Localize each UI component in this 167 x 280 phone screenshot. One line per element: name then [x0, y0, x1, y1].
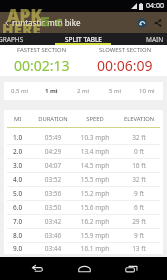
button[interactable]: SLOWEST SECTION — [83, 45, 167, 76]
staticText: 15.2 mph — [75, 189, 115, 198]
staticText: 5 mi — [109, 87, 122, 95]
staticText: SPEED — [75, 115, 115, 123]
staticText: 00:02:13 — [14, 56, 70, 75]
staticText: 04:00 — [146, 1, 164, 11]
staticText: GRAPHS — [0, 35, 24, 44]
staticText: 14.5 mph — [75, 161, 115, 170]
staticText: 1 mi — [45, 87, 58, 95]
staticText: 4.0 — [4, 175, 31, 184]
button[interactable]: FASTEST SECTION — [0, 45, 83, 76]
staticText: 04:29 — [31, 147, 75, 156]
button[interactable]: 2.0 — [4, 145, 163, 158]
staticText: MOB — [37, 14, 62, 27]
button[interactable]: Home — [70, 257, 98, 280]
button[interactable]: 6.0 — [4, 201, 163, 214]
button[interactable]: 8.0 — [4, 229, 163, 242]
button[interactable]: 0.5 mi — [4, 82, 35, 100]
staticText: 0.5 mi — [11, 87, 29, 95]
staticText: 04:07 — [31, 161, 75, 170]
staticText: 00:06:09 — [97, 56, 153, 75]
staticText: 10.3 mph — [75, 133, 115, 142]
staticText: 03:46 — [31, 231, 75, 240]
button[interactable]: 1.0 — [4, 131, 163, 144]
staticText: MI — [4, 115, 31, 123]
staticText: 13.4 mph — [75, 147, 115, 156]
staticText: 15.6 mph — [75, 203, 115, 212]
button[interactable]: Share — [150, 12, 166, 33]
staticText: 15.5 mph — [75, 175, 115, 184]
button[interactable]: 1 mi — [35, 82, 67, 100]
staticText: 03:50 — [31, 203, 75, 212]
staticText: 6.0 — [4, 203, 31, 212]
button[interactable]: Recent apps — [117, 257, 145, 280]
staticText: 10 mi — [139, 87, 155, 95]
button[interactable]: 9.0 — [4, 243, 163, 254]
staticText: 05:49 — [31, 133, 75, 142]
staticText: 16.1 mph — [75, 244, 115, 253]
button[interactable]: Back — [22, 257, 50, 280]
button[interactable]: 7.0 — [4, 215, 163, 228]
button[interactable]: 3.0 — [4, 159, 163, 172]
staticText: APK — [7, 4, 43, 27]
staticText: 2 mi — [77, 87, 90, 95]
staticText: 1.0 — [4, 133, 31, 142]
staticText: 32 ft — [115, 133, 163, 142]
button[interactable]: GRAPHS — [0, 33, 47, 45]
staticText: 03:42 — [31, 217, 75, 226]
staticText: SLOWEST SECTION — [99, 46, 152, 54]
staticText: 13 ft — [115, 244, 163, 253]
staticText: 6 ft — [115, 203, 163, 212]
staticText: 03:44 — [31, 244, 75, 253]
staticText: FASTEST SECTION — [17, 46, 67, 54]
staticText: 29 ft — [115, 217, 163, 226]
staticText: 03:56 — [31, 189, 75, 198]
staticText: 8.0 — [4, 231, 31, 240]
staticText: 3.0 — [4, 161, 31, 170]
staticText: 16.2 mph — [75, 217, 115, 226]
staticText: 16 ft — [115, 161, 163, 170]
staticText: 7.0 — [4, 217, 31, 226]
staticText: 15.9 mph — [75, 231, 115, 240]
staticText: runtastic mtn bike — [12, 17, 81, 28]
button[interactable]: 10 mi — [131, 82, 163, 100]
button[interactable]: 5.0 — [4, 187, 163, 200]
staticText: 5.0 — [4, 189, 31, 198]
staticText: HERE — [2, 19, 41, 33]
staticText: 2.0 — [4, 147, 31, 156]
staticText: ELEVATION — [115, 115, 163, 123]
button[interactable]: 4.0 — [4, 173, 163, 186]
staticText: 0 ft — [115, 147, 163, 156]
staticText: MAIN — [146, 35, 164, 44]
staticText: 32 ft — [115, 175, 163, 184]
button[interactable]: Navigate up — [1, 12, 12, 33]
staticText: 9 ft — [115, 231, 163, 240]
button[interactable]: SPLIT TABLE — [47, 33, 119, 45]
button[interactable]: MAIN — [119, 33, 167, 45]
button[interactable]: Sync with Runtastic — [133, 12, 150, 33]
staticText: SPLIT TABLE — [65, 35, 102, 44]
staticText: 03:52 — [31, 175, 75, 184]
button[interactable]: 5 mi — [99, 82, 131, 100]
staticText: DURATION — [31, 115, 75, 123]
staticText: 9.0 — [4, 244, 31, 253]
staticText: 9 ft — [115, 189, 163, 198]
button[interactable]: 2 mi — [67, 82, 99, 100]
